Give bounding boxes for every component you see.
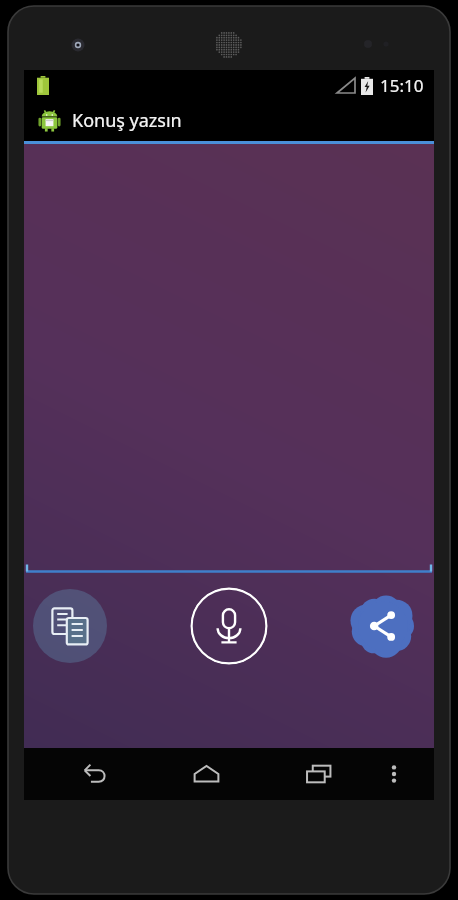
- button[interactable]: Share: [345, 588, 421, 664]
- button[interactable]: Start speech recognition: [190, 587, 268, 665]
- button[interactable]: Copy text: [33, 589, 107, 663]
- button[interactable]: More options: [371, 751, 417, 797]
- button[interactable]: Recent apps: [293, 748, 345, 800]
- staticText: 15:10: [380, 74, 424, 97]
- button[interactable]: Back: [67, 748, 119, 800]
- staticText: Konuş yazsın: [72, 108, 182, 133]
- button[interactable]: Home: [180, 748, 232, 800]
